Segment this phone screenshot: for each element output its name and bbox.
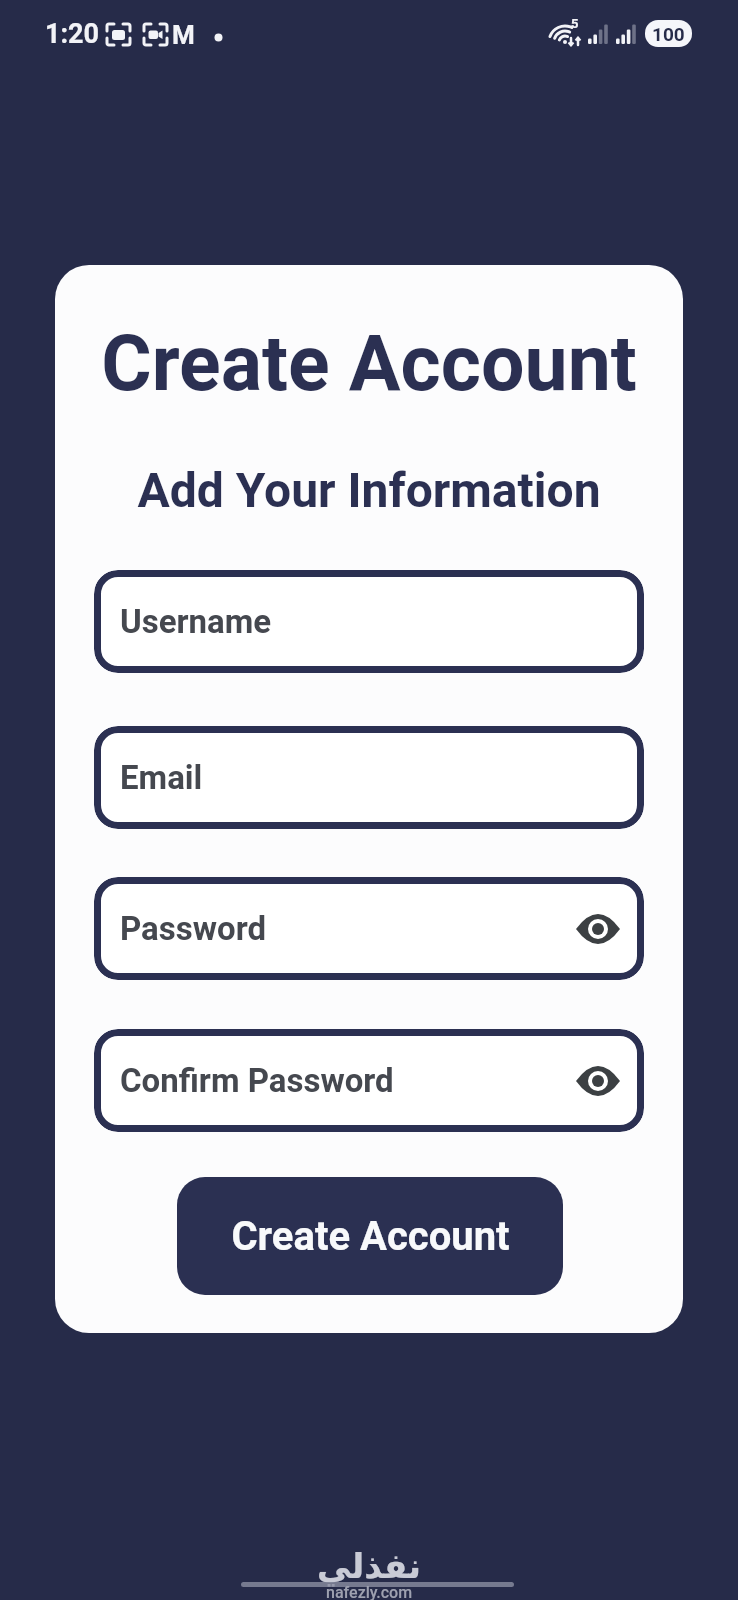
staticText: Username <box>120 602 272 641</box>
staticText: Create Account <box>101 319 637 400</box>
staticText: Create Account <box>231 1213 510 1260</box>
staticText: Add Your Information <box>137 462 601 518</box>
staticText: M <box>172 20 195 50</box>
button[interactable] <box>576 914 620 944</box>
staticText: نفذلي <box>317 1546 422 1586</box>
staticText: 100 <box>652 23 685 45</box>
button[interactable] <box>576 1066 620 1096</box>
staticText: Email <box>120 758 203 797</box>
staticText: nafezly.com <box>326 1583 413 1600</box>
button[interactable]: Password <box>94 877 644 980</box>
staticText: 5 <box>571 16 579 31</box>
staticText: Confirm Password <box>120 1061 394 1100</box>
button[interactable]: Email <box>94 726 644 829</box>
staticText: 1:20 <box>45 18 100 50</box>
button[interactable]: Create Account <box>177 1177 563 1295</box>
button[interactable]: Username <box>94 570 644 673</box>
button[interactable]: Confirm Password <box>94 1029 644 1132</box>
staticText: Password <box>120 909 267 948</box>
